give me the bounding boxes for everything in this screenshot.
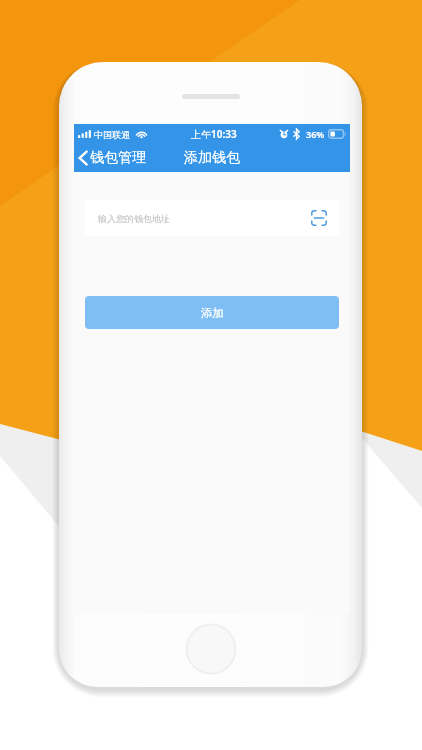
- staticText: 中国联通: [94, 129, 130, 140]
- staticText: 上午10:33: [191, 127, 237, 141]
- staticText: 输入您的钱包地址: [98, 213, 170, 224]
- button[interactable]: 添加: [85, 296, 339, 329]
- button[interactable]: 钱包管理: [74, 144, 146, 172]
- button[interactable]: Scan QR code: [311, 210, 327, 226]
- staticText: 36%: [306, 128, 325, 140]
- staticText: 添加: [201, 306, 224, 320]
- button[interactable]: Home: [185, 623, 237, 675]
- button[interactable]: 输入您的钱包地址: [85, 200, 339, 236]
- staticText: 添加钱包: [74, 149, 350, 172]
- staticText: 钱包管理: [90, 149, 146, 167]
